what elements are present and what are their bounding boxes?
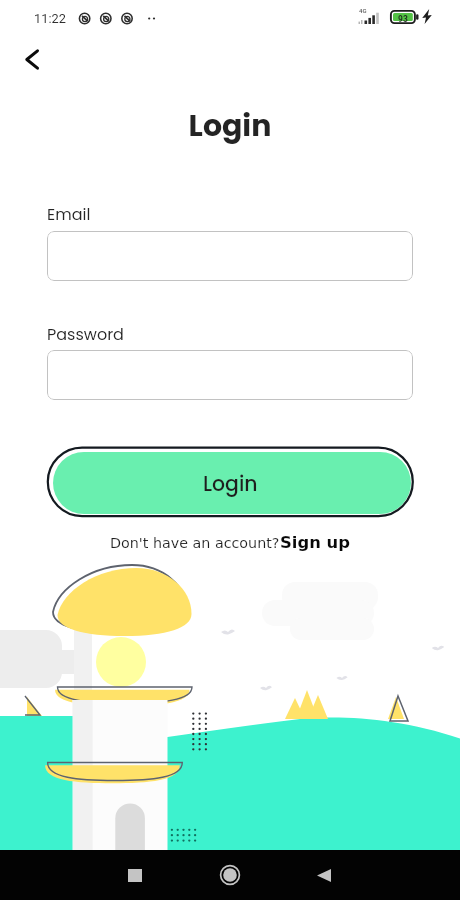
button[interactable]: Back	[299, 850, 349, 900]
button[interactable]: Recent apps	[110, 850, 160, 900]
button[interactable]	[47, 350, 413, 400]
button[interactable]: Sign up	[280, 533, 350, 552]
staticText: Login	[0, 105, 460, 147]
staticText: Login	[203, 470, 258, 499]
button[interactable]: Back	[9, 37, 54, 82]
staticText: 93	[398, 14, 408, 24]
staticText: Email	[47, 203, 91, 225]
button[interactable]: Home	[205, 850, 255, 900]
button[interactable]	[47, 231, 413, 281]
staticText: Password	[47, 323, 124, 345]
button[interactable]: Login	[46, 446, 414, 518]
staticText: Don't have an account?	[110, 535, 280, 552]
staticText: 11:22	[34, 11, 66, 26]
staticText: 4G	[359, 7, 367, 14]
